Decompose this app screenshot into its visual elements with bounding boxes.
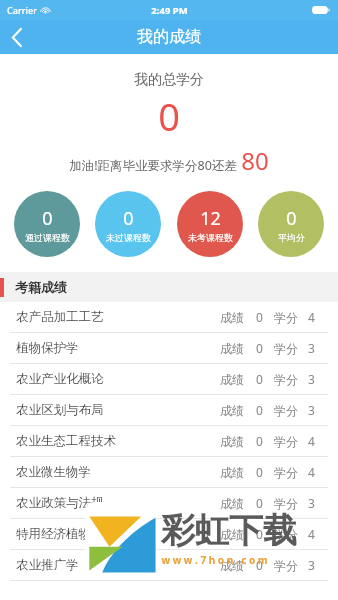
staticText: 特用经济植物生产技术 (16, 526, 141, 542)
staticText: 学分 (274, 465, 298, 480)
staticText: 未过课程数 (106, 232, 151, 243)
staticText: 0 (158, 90, 180, 142)
staticText: 学分 (274, 558, 298, 573)
staticText: 成绩 (220, 558, 244, 573)
staticText: 3 (308, 402, 315, 418)
staticText: 学分 (274, 527, 298, 542)
staticText: 成绩 (220, 372, 244, 387)
staticText: 未考课程数 (188, 232, 233, 243)
staticText: 0 (256, 309, 263, 325)
staticText: 成绩 (220, 310, 244, 325)
button[interactable]: 农业微生物学 (0, 457, 338, 487)
staticText: 植物保护学 (16, 340, 79, 356)
staticText: 4 (308, 526, 315, 542)
staticText: 成绩 (220, 527, 244, 542)
staticText: 学分 (274, 310, 298, 325)
staticText: 0 (123, 206, 134, 231)
staticText: 4 (308, 464, 315, 480)
button[interactable]: 农业生态工程技术 (0, 426, 338, 456)
button[interactable]: 0 (95, 191, 161, 257)
staticText: 2:49 PM (151, 4, 188, 17)
button[interactable]: 植物保护学 (0, 333, 338, 363)
staticText: 农业生态工程技术 (16, 433, 116, 449)
staticText: 农业政策与法规 (16, 495, 104, 511)
staticText: 0 (42, 206, 53, 231)
button[interactable]: 农产品加工工艺 (0, 302, 338, 332)
staticText: 农业推广学 (16, 557, 79, 573)
button[interactable]: 农业区划与布局 (0, 395, 338, 425)
staticText: 学分 (274, 403, 298, 418)
staticText: w w w . 7 h o n . c o m (161, 553, 268, 567)
staticText: 3 (308, 557, 315, 573)
staticText: 0 (256, 526, 263, 542)
button[interactable]: 0 (14, 191, 80, 257)
staticText: 我的总学分 (134, 71, 204, 89)
staticText: 4 (308, 433, 315, 449)
button[interactable]: Back (0, 20, 34, 54)
staticText: 0 (256, 464, 263, 480)
staticText: Carrier (7, 4, 37, 16)
button[interactable]: 农业政策与法规 (0, 488, 338, 518)
staticText: 0 (256, 557, 263, 573)
staticText: 0 (256, 433, 263, 449)
staticText: 我的成绩 (137, 27, 201, 47)
staticText: 0 (256, 340, 263, 356)
staticText: 学分 (274, 434, 298, 449)
staticText: 考籍成绩 (15, 279, 67, 295)
staticText: 平均分 (278, 232, 305, 243)
staticText: 学分 (274, 341, 298, 356)
staticText: 0 (256, 495, 263, 511)
staticText: 加油!距离毕业要求学分80还差 (69, 157, 237, 174)
staticText: 0 (256, 402, 263, 418)
staticText: 成绩 (220, 403, 244, 418)
button[interactable]: 12 (177, 191, 243, 257)
staticText: 学分 (274, 496, 298, 511)
staticText: 4 (308, 309, 315, 325)
staticText: 3 (308, 371, 315, 387)
staticText: 成绩 (220, 496, 244, 511)
staticText: 成绩 (220, 465, 244, 480)
staticText: 通过课程数 (25, 232, 70, 243)
staticText: 12 (200, 206, 221, 231)
staticText: 成绩 (220, 434, 244, 449)
staticText: 3 (308, 495, 315, 511)
staticText: 农业微生物学 (16, 464, 91, 480)
button[interactable]: 0 (258, 191, 324, 257)
staticText: 学分 (274, 372, 298, 387)
staticText: 成绩 (220, 341, 244, 356)
staticText: 80 (241, 144, 269, 177)
staticText: 农业区划与布局 (16, 402, 104, 418)
staticText: 彩虹下载 (161, 509, 297, 552)
staticText: 农业产业化概论 (16, 371, 104, 387)
staticText: 农产品加工工艺 (16, 309, 104, 325)
staticText: 0 (286, 206, 297, 231)
staticText: 0 (256, 371, 263, 387)
button[interactable]: 农业推广学 (0, 550, 338, 580)
button[interactable]: 特用经济植物生产技术 (0, 519, 338, 549)
staticText: 3 (308, 340, 315, 356)
button[interactable]: 农业产业化概论 (0, 364, 338, 394)
